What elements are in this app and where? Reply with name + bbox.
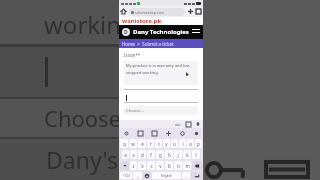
button[interactable]: u [171, 139, 178, 148]
button[interactable]: b [165, 161, 173, 170]
staticText: v [159, 163, 162, 169]
staticText: Issue** [124, 52, 141, 58]
button[interactable]: GIF [150, 129, 158, 137]
button[interactable]: m [183, 161, 191, 170]
button[interactable]: s [130, 150, 137, 159]
staticText: abc [175, 122, 181, 127]
staticText: f [150, 152, 152, 158]
staticText: D [124, 29, 128, 36]
button[interactable]: v [156, 161, 164, 170]
staticText: . [185, 173, 187, 179]
button[interactable]: l [192, 150, 200, 159]
button[interactable]: Translate [164, 129, 172, 137]
button[interactable]: o [187, 139, 194, 148]
staticText: Choose... [126, 108, 145, 114]
button[interactable]: My product is in warranty and has stoppe… [124, 61, 198, 85]
button[interactable]: Sticker [136, 129, 144, 137]
staticText: z [132, 163, 135, 169]
staticText: k [186, 152, 189, 158]
button[interactable]: Emoji [143, 172, 151, 179]
button[interactable]: . [182, 172, 190, 179]
button[interactable]: r [147, 139, 154, 148]
button[interactable]: Dany's Web [0, 139, 320, 180]
staticText: x [141, 163, 144, 169]
staticText: q [123, 141, 126, 147]
staticText: Dany's Web [46, 144, 173, 175]
button[interactable]: Clipboard [186, 122, 191, 127]
button[interactable]: schemeshop.com [129, 8, 185, 16]
staticText: i [182, 141, 184, 147]
staticText: u [173, 141, 176, 147]
staticText: Dany Technologies [133, 28, 189, 36]
button[interactable]: Shift [120, 161, 129, 170]
button[interactable]: g [156, 150, 164, 159]
staticText: Choose... [44, 103, 139, 133]
staticText: r [150, 141, 152, 147]
staticText: ?123 [123, 174, 130, 178]
button[interactable]: h [165, 150, 173, 159]
button[interactable]: ?123 [120, 172, 132, 179]
staticText: schemeshop.com [135, 10, 164, 15]
button[interactable]: i [179, 139, 186, 148]
button[interactable]: z [130, 161, 137, 170]
button[interactable]: a [122, 150, 129, 159]
button[interactable]: Menu [192, 28, 200, 36]
button[interactable]: New tab [188, 9, 193, 14]
staticText: g [159, 152, 162, 158]
button[interactable] [124, 93, 198, 102]
staticText: n [177, 163, 180, 169]
staticText: > Submit a ticket [135, 41, 174, 47]
staticText: m [185, 163, 190, 169]
staticText: t [158, 141, 160, 147]
button[interactable]: Enter [191, 172, 202, 179]
staticText: p [197, 141, 200, 147]
button[interactable]: Emoji [178, 129, 186, 137]
staticText: d [141, 152, 144, 158]
button[interactable]: Choose... [124, 106, 198, 115]
button[interactable]: , [133, 172, 142, 179]
staticText: wanistore.pk [122, 17, 162, 25]
staticText: b [168, 163, 171, 169]
button[interactable]: k [183, 150, 191, 159]
staticText: , [137, 173, 139, 179]
staticText: h [168, 152, 171, 158]
staticText: English [161, 174, 172, 178]
staticText: y [165, 141, 168, 147]
button[interactable]: n [174, 161, 182, 170]
staticText: s [132, 152, 135, 158]
staticText: e [141, 141, 144, 147]
staticText: w [131, 141, 135, 147]
button[interactable]: p [195, 139, 202, 148]
staticText: c [150, 163, 153, 169]
button[interactable]: Voice [192, 129, 200, 137]
staticText: working. [44, 8, 143, 41]
staticText: My product is in warranty and has stoppe… [126, 63, 196, 75]
button[interactable]: f [147, 150, 155, 159]
button[interactable]: w [129, 139, 137, 148]
staticText: o [189, 141, 192, 147]
button[interactable]: y [163, 139, 170, 148]
other: Space key [264, 158, 310, 180]
button[interactable]: x [138, 161, 146, 170]
button[interactable]: More [196, 122, 200, 126]
button[interactable]: Dany Technologies logo [122, 28, 130, 36]
button[interactable]: t [155, 139, 162, 148]
staticText: l [195, 152, 197, 158]
button[interactable]: q [120, 139, 128, 148]
other: Shift key [206, 158, 246, 180]
button[interactable]: e [138, 139, 146, 148]
button[interactable]: d [138, 150, 146, 159]
staticText: a [124, 152, 127, 158]
button[interactable]: j [174, 150, 182, 159]
button[interactable]: Home [121, 9, 126, 14]
button[interactable]: Backspace [192, 161, 202, 170]
button[interactable]: English [152, 172, 181, 179]
staticText: j [177, 152, 179, 158]
button[interactable]: Home [122, 41, 135, 47]
button[interactable]: c [147, 161, 155, 170]
button[interactable]: Choose... [0, 99, 320, 137]
button[interactable]: Settings [122, 129, 130, 137]
button[interactable]: Tabs [196, 9, 201, 14]
